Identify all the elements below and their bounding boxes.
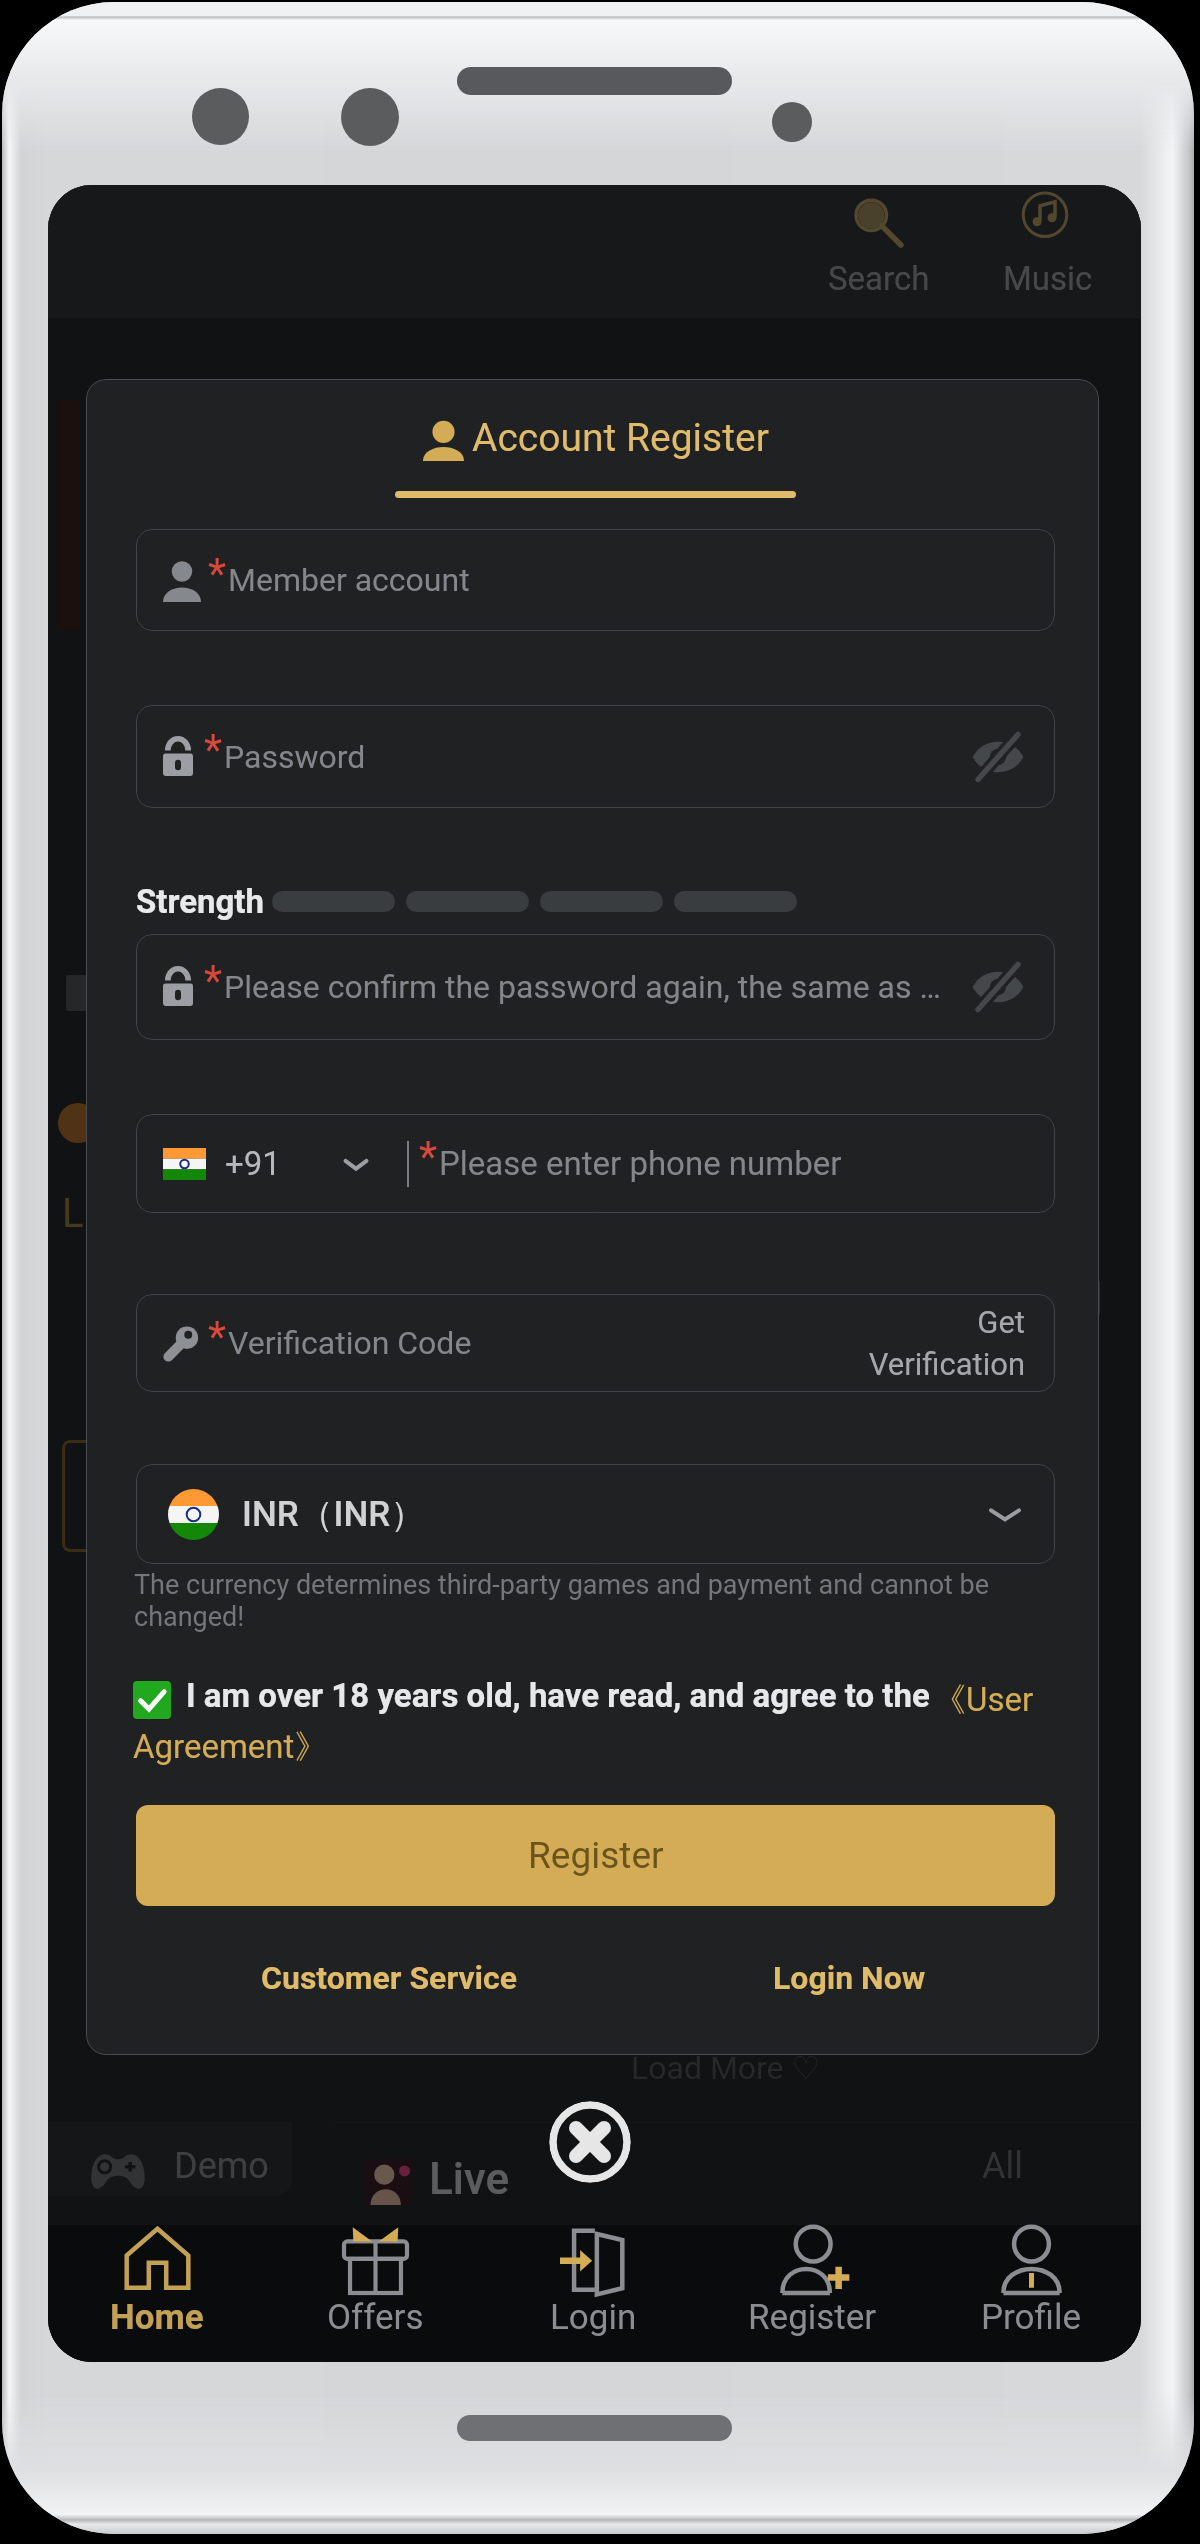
staticText: Offers (327, 2297, 424, 2338)
button[interactable]: Music (996, 185, 1126, 305)
button[interactable]: Login (484, 2225, 703, 2362)
button[interactable]: Login Now (773, 1959, 926, 1997)
staticText: Register (748, 2297, 877, 2338)
button[interactable]: Offers (266, 2225, 484, 2362)
button[interactable]: * (136, 705, 1055, 808)
staticText: Music (1003, 259, 1093, 298)
button[interactable]: Live (429, 2153, 510, 2205)
button[interactable]: +91 (136, 1114, 1055, 1213)
staticText: * (419, 1132, 438, 1181)
staticText: Verification Code (228, 1324, 472, 1362)
staticText: Home (110, 2297, 204, 2338)
staticText: Please enter phone number (439, 1144, 842, 1183)
staticText: I am over 18 years old, have read, and a… (186, 1676, 930, 1715)
staticText: * (204, 725, 223, 774)
button[interactable]: INR（INR） (136, 1464, 1055, 1564)
staticText: * (204, 956, 223, 1005)
button[interactable]: * (136, 529, 1055, 631)
button[interactable]: 《User (933, 1679, 1034, 1721)
button[interactable]: Register (703, 2225, 922, 2362)
staticText: Password (224, 738, 366, 776)
staticText: Get Verification (868, 1304, 1025, 1383)
button[interactable]: Agreement》 (133, 1726, 328, 1768)
staticText: * (208, 549, 227, 598)
staticText: Search (828, 259, 930, 298)
staticText: Profile (981, 2297, 1082, 2338)
staticText: INR（INR） (242, 1492, 426, 1536)
staticText: Register (528, 1834, 664, 1877)
staticText: Member account (228, 561, 470, 599)
button[interactable]: Demo (174, 2145, 269, 2187)
button[interactable]: Profile (922, 2225, 1141, 2362)
button[interactable]: Search (828, 185, 958, 305)
button[interactable]: Home (48, 2225, 266, 2362)
button[interactable]: Customer Service (261, 1959, 518, 1997)
staticText: L (62, 1190, 84, 1237)
button[interactable]: Agree to user agreement (133, 1681, 171, 1719)
staticText: Load More ♡ (631, 2049, 821, 2087)
staticText: Login (550, 2297, 637, 2338)
staticText: +91 (225, 1144, 281, 1183)
staticText: Please confirm the password again, the s… (224, 968, 941, 1006)
button[interactable]: All (982, 2145, 1023, 2187)
staticText: The currency determines third-party game… (134, 1569, 994, 1632)
button[interactable]: Register (136, 1805, 1055, 1906)
button[interactable]: * (136, 934, 1055, 1040)
staticText: Account Register (472, 415, 769, 461)
staticText: * (208, 1312, 227, 1361)
staticText: Strength (136, 882, 264, 921)
button[interactable]: Close (549, 2101, 631, 2183)
button[interactable]: * (136, 1294, 1055, 1392)
